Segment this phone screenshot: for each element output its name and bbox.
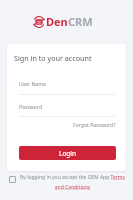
- staticText: Den: [46, 14, 68, 29]
- staticText: User Name: [19, 81, 46, 88]
- staticText: Login: [59, 149, 77, 158]
- staticText: Password: [19, 104, 43, 111]
- staticText: CRM: [68, 14, 93, 29]
- button[interactable]: Login: [19, 146, 116, 160]
- button[interactable]: Forgot Password?: [19, 122, 116, 129]
- button[interactable]: Accept terms and conditions: [9, 176, 16, 183]
- staticText: Sign in to your account: [14, 53, 92, 63]
- button[interactable]: By logging in you accept the GEM App Ter…: [20, 174, 125, 190]
- staticText: Forgot Password?: [73, 122, 116, 129]
